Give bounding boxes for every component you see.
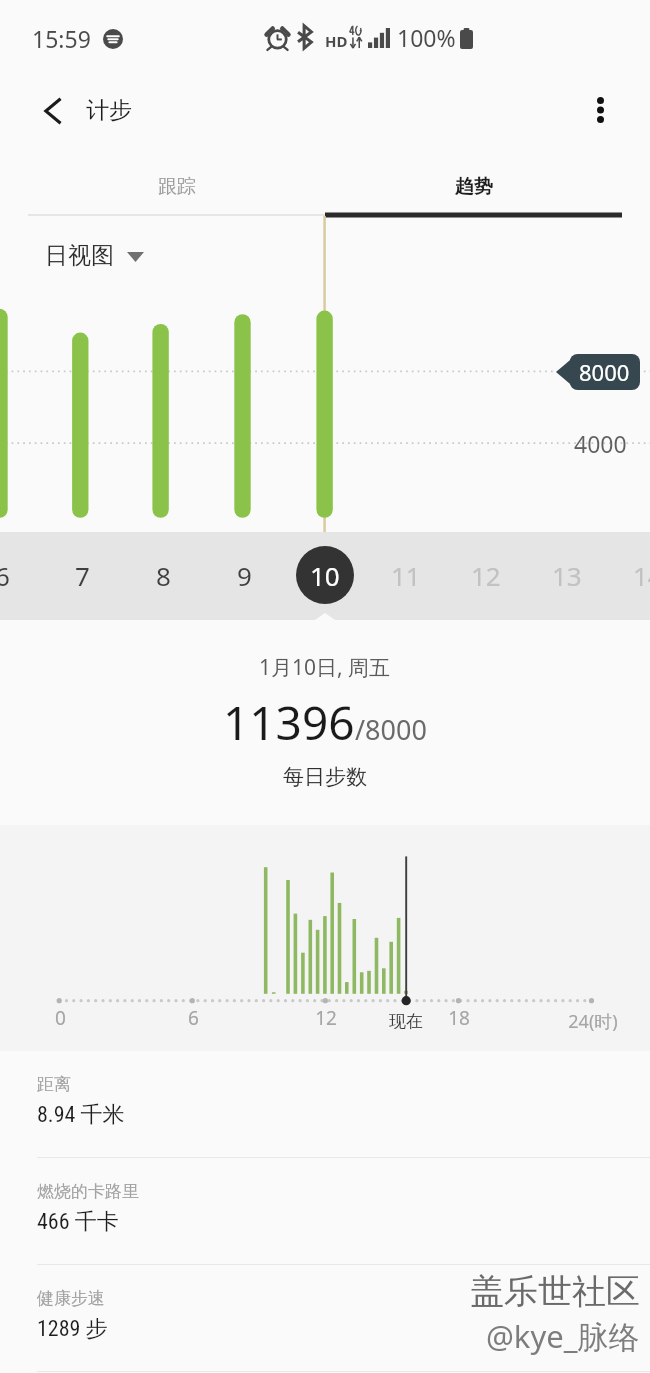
staticText: 466 千卡 — [37, 1208, 119, 1236]
staticText: 8 — [156, 558, 171, 593]
button[interactable]: 7 — [53, 546, 111, 604]
button[interactable]: 13 — [538, 546, 596, 604]
button[interactable]: 趋势 — [325, 154, 622, 219]
staticText: @kye_脉络 — [486, 1315, 640, 1355]
button[interactable]: 燃烧的卡路里 — [0, 1158, 650, 1264]
staticText: 健康步速 — [37, 1288, 105, 1309]
button[interactable]: 12 — [457, 546, 515, 604]
staticText: 7 — [75, 558, 90, 593]
button[interactable]: 6 — [0, 546, 31, 604]
button[interactable]: 11 — [377, 546, 435, 604]
staticText: 9 — [237, 558, 252, 593]
button[interactable]: 9 — [215, 546, 273, 604]
staticText: 18 — [448, 1005, 470, 1031]
button[interactable]: 8 — [134, 546, 192, 604]
staticText: 15:59 — [32, 23, 91, 54]
staticText: 0 — [55, 1005, 66, 1031]
staticText: 11 — [391, 558, 421, 593]
staticText: 日视图 — [45, 241, 114, 270]
staticText: 1月10日, 周五 — [259, 653, 391, 682]
staticText: 13 — [552, 558, 582, 593]
staticText: 6 — [0, 558, 10, 593]
staticText: 跟踪 — [158, 175, 196, 199]
button[interactable]: Back — [44, 96, 140, 125]
staticText: 每日步数 — [283, 764, 367, 790]
button[interactable]: 14 — [619, 546, 650, 604]
button[interactable]: 10 — [296, 546, 354, 604]
staticText: HD — [325, 31, 348, 51]
button[interactable]: 健康步速 — [0, 1265, 650, 1371]
staticText: 12 — [315, 1005, 337, 1031]
staticText: 燃烧的卡路里 — [37, 1181, 139, 1202]
staticText: 8.94 千米 — [37, 1101, 125, 1129]
staticText: 11396 — [223, 691, 355, 754]
staticText: 6 — [188, 1005, 199, 1031]
staticText: /8000 — [355, 711, 427, 748]
staticText: 趋势 — [455, 175, 493, 199]
button[interactable]: 距离 — [0, 1051, 650, 1157]
staticText: 1289 步 — [37, 1315, 108, 1343]
button[interactable]: 跟踪 — [28, 154, 325, 219]
staticText: 计步 — [86, 96, 132, 125]
staticText: 14 — [633, 558, 650, 593]
staticText: 4000 — [574, 428, 627, 454]
staticText: 10 — [310, 558, 340, 593]
staticText: 24(时) — [568, 1009, 618, 1034]
staticText: 12 — [471, 558, 501, 593]
staticText: 8000 — [579, 357, 630, 387]
staticText: 现在 — [389, 1011, 423, 1032]
button[interactable]: More options — [576, 86, 624, 134]
button[interactable]: 日视图 — [39, 237, 150, 274]
staticText: 100% — [397, 22, 456, 53]
staticText: 距离 — [37, 1074, 71, 1095]
staticText: 盖乐世社区 — [470, 1270, 640, 1310]
other: Back — [44, 98, 62, 124]
